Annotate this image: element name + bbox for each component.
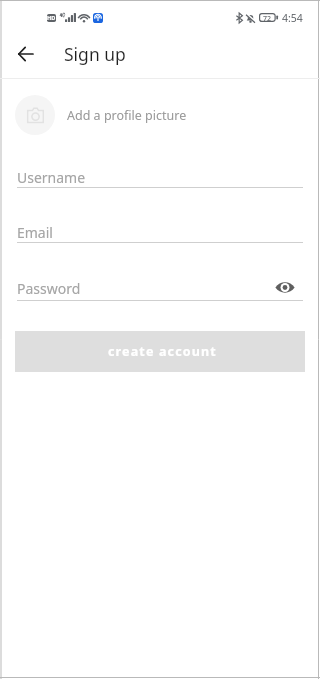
button[interactable]: Password <box>17 271 303 301</box>
button[interactable]: Username <box>17 160 303 188</box>
staticText: Add a profile picture <box>67 107 187 124</box>
staticText: Username <box>17 168 86 187</box>
staticText: Sign up <box>64 42 126 66</box>
staticText: Password <box>17 279 81 298</box>
staticText: HD <box>47 14 56 22</box>
staticText: Email <box>17 223 53 242</box>
button[interactable]: create account <box>15 331 305 372</box>
button[interactable]: Email <box>17 215 303 243</box>
staticText: 72 <box>263 14 272 24</box>
button[interactable]: Add a profile picture <box>0 95 320 135</box>
button[interactable]: Show password <box>270 273 299 302</box>
staticText: create account <box>108 343 217 360</box>
staticText: 4:54 <box>282 11 303 25</box>
button[interactable]: Back <box>3 32 47 76</box>
